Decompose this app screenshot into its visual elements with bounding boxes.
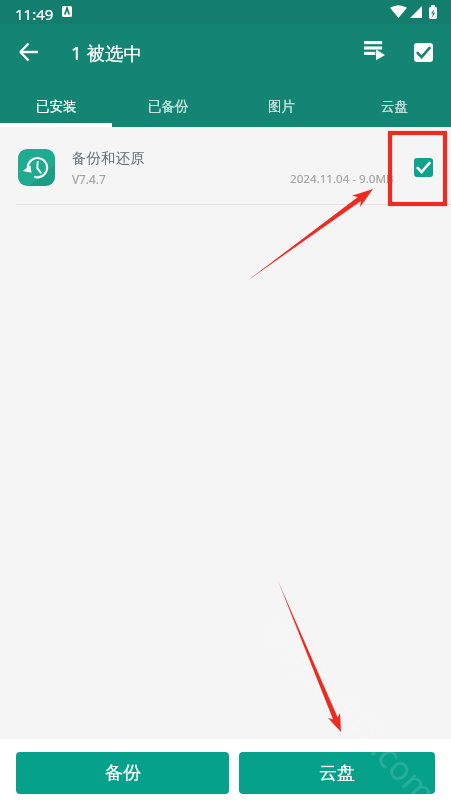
staticText: 绿色资源网.com [250, 607, 447, 803]
button[interactable]: 已安装 [0, 80, 112, 127]
button[interactable]: Selected [404, 148, 442, 186]
staticText: 2024.11.04 - 9.0MB [290, 171, 394, 187]
button[interactable]: 云盘 [338, 80, 451, 127]
staticText: 已安装 [36, 98, 77, 115]
staticText: 备份和还原 [72, 149, 145, 167]
button[interactable]: Sort [348, 24, 400, 76]
button[interactable]: 云盘 [239, 752, 435, 794]
staticText: 备份 [105, 762, 141, 785]
button[interactable]: Back [0, 24, 56, 80]
button[interactable]: 已备份 [112, 80, 225, 127]
button[interactable] [0, 129, 451, 205]
staticText: 云盘 [381, 98, 408, 115]
button[interactable]: 图片 [225, 80, 338, 127]
staticText: 云盘 [319, 762, 355, 785]
button[interactable]: 备份 [16, 752, 229, 794]
staticText: V7.4.7 [72, 171, 106, 187]
staticText: 已备份 [148, 98, 189, 115]
button[interactable]: Select all [395, 24, 451, 80]
staticText: 图片 [268, 98, 295, 115]
staticText: 1 被选中 [71, 40, 142, 65]
staticText: 11:49 [15, 4, 54, 24]
